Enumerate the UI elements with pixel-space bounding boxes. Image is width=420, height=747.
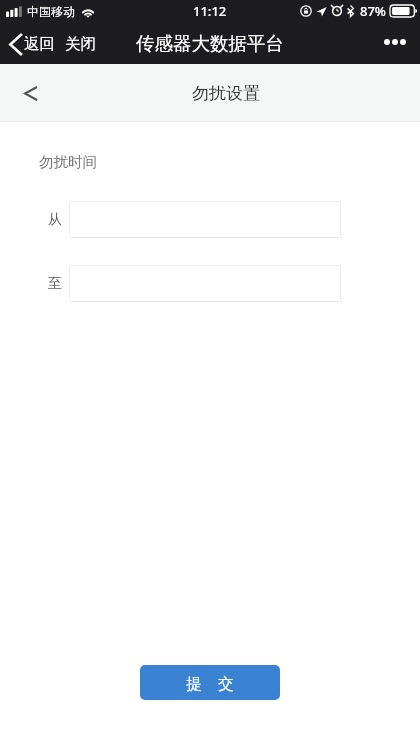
staticText: 11:12 (193, 2, 227, 20)
button[interactable]: Back (13, 73, 49, 113)
button[interactable]: 返回 (0, 24, 55, 64)
button[interactable]: 关闭 (55, 24, 104, 64)
button[interactable]: More options (384, 39, 406, 45)
staticText: 交 (218, 674, 234, 694)
staticText: 勿扰设置 (192, 83, 260, 104)
staticText: 传感器大数据平台 (136, 32, 284, 55)
staticText: 返回 (24, 34, 55, 54)
staticText: 关闭 (65, 34, 96, 54)
staticText: 中国移动 (27, 4, 75, 19)
button[interactable]: 提 (140, 665, 280, 700)
button[interactable] (69, 201, 341, 238)
staticText: 勿扰时间 (39, 153, 97, 171)
staticText: 87% (360, 2, 386, 20)
staticText: 至 (48, 275, 62, 293)
staticText: 提 (186, 674, 202, 694)
button[interactable] (69, 265, 341, 302)
staticText: 从 (48, 211, 62, 229)
